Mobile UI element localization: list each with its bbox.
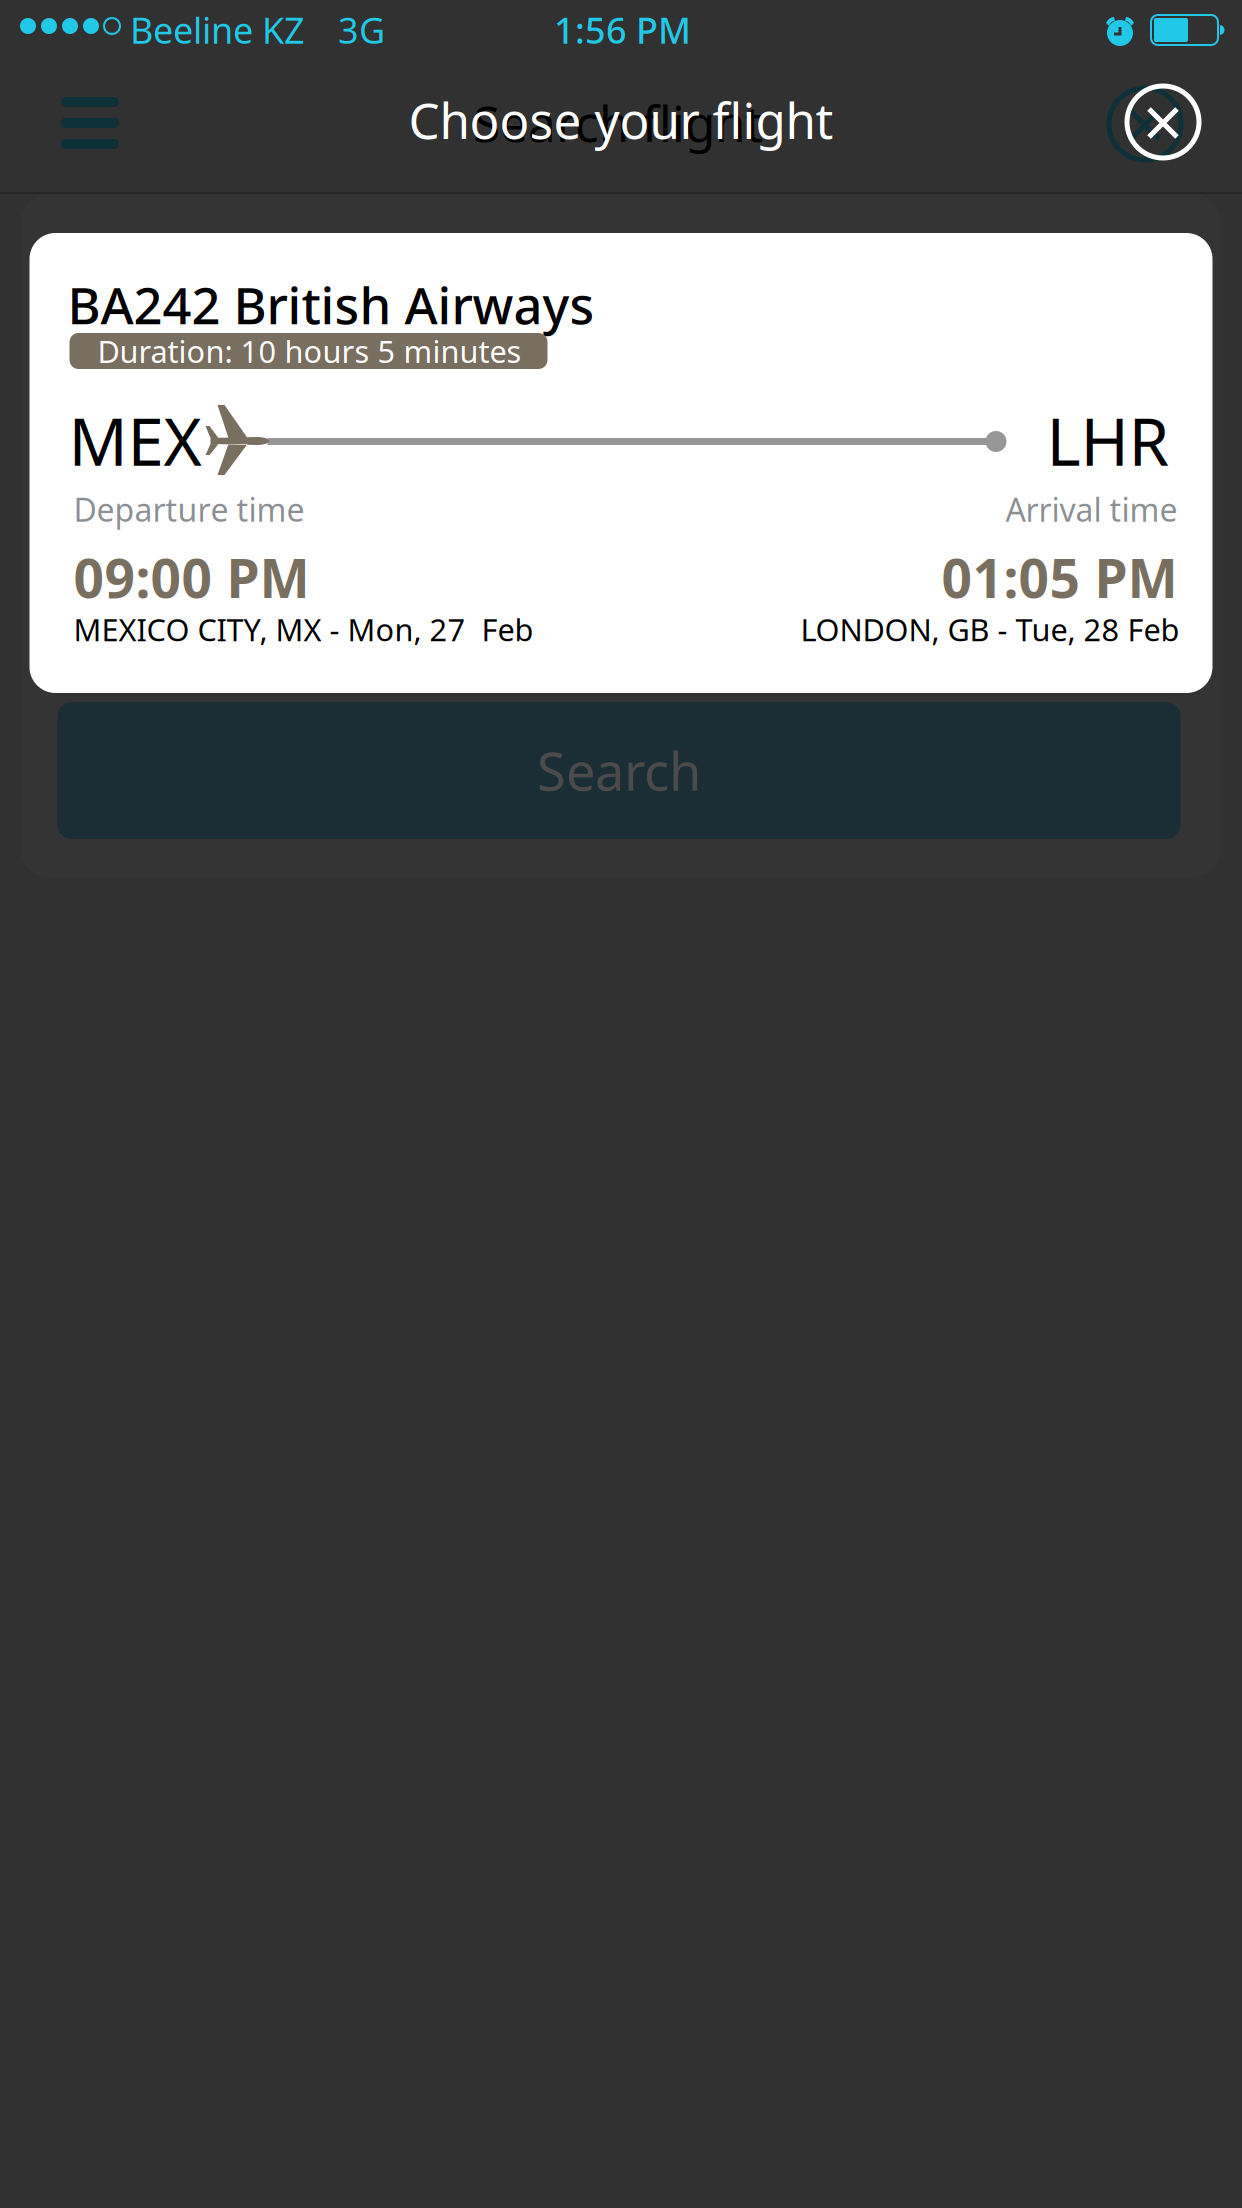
staticText: LHR <box>1046 397 1169 484</box>
staticText: Beeline KZ <box>130 6 305 54</box>
staticText: 1:56 PM <box>554 6 691 54</box>
staticText: LONDON, GB - Tue, 28 Feb <box>800 609 1179 650</box>
staticText: Search <box>537 736 701 805</box>
staticText: Arrival time <box>1005 488 1177 530</box>
staticText: Search flight <box>473 90 763 155</box>
button[interactable]: Search <box>57 702 1180 839</box>
staticText: Departure time <box>73 488 304 530</box>
button[interactable]: Close <box>0 60 1193 162</box>
staticText: Choose your flight <box>408 87 833 152</box>
staticText: Duration: 10 hours 5 minutes <box>97 331 521 371</box>
staticText: 3G <box>338 6 385 54</box>
staticText: 01:05 PM <box>941 542 1177 613</box>
staticText: MEX <box>68 397 201 484</box>
button[interactable]: BA242 British Airways <box>29 233 1212 693</box>
staticText: 09:00 PM <box>73 542 309 613</box>
staticText: BA242 British Airways <box>67 271 594 338</box>
button[interactable]: Menu <box>0 60 148 172</box>
staticText: MEXICO CITY, MX - Mon, 27 Feb <box>73 609 533 650</box>
